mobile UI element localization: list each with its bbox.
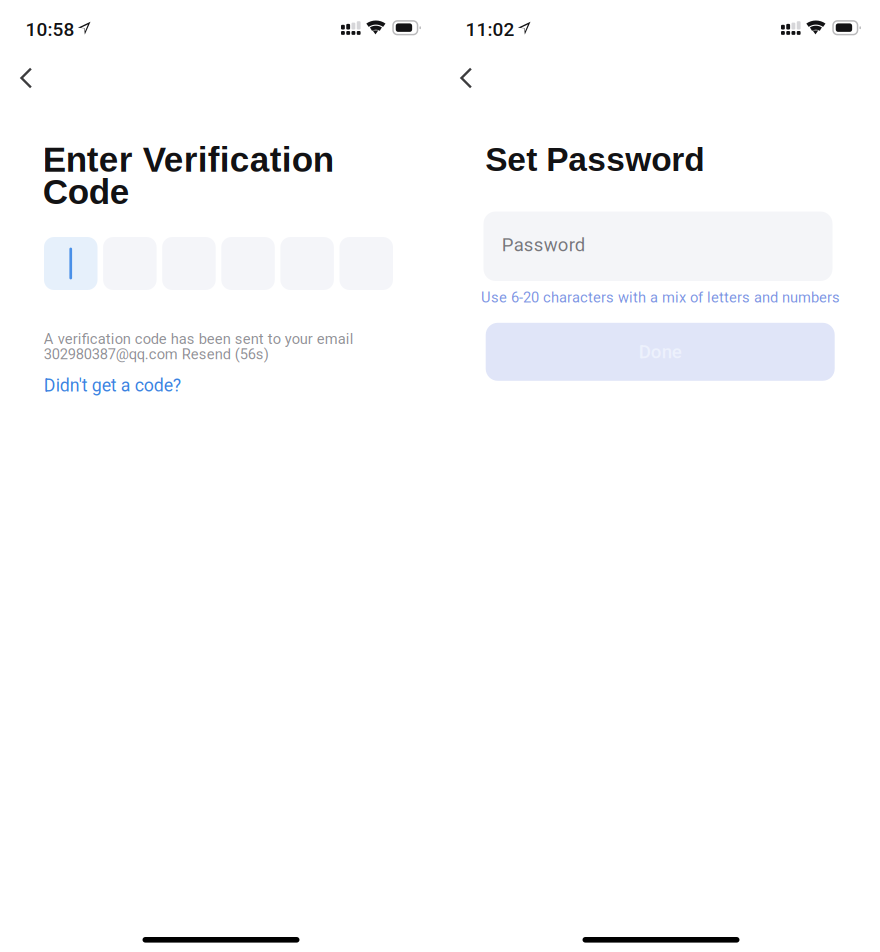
staticText: Password [502,234,585,256]
staticText: Didn't get a code? [44,375,181,396]
button[interactable]: Back [446,56,492,100]
staticText: 10:58 [26,18,75,41]
staticText: 11:02 [466,18,515,41]
staticText: Enter Verification [43,140,334,179]
staticText: Set Password [485,141,704,178]
staticText: A verification code has been sent to you… [44,330,354,347]
staticText: Use 6-20 characters with a mix of letter… [481,289,840,306]
staticText: Done [639,341,682,363]
staticText: Code [43,172,130,211]
button[interactable]: Didn't get a code? [44,374,194,396]
staticText: 302980387@qq.com Resend (56s) [44,346,269,363]
button[interactable]: Back [6,56,52,100]
